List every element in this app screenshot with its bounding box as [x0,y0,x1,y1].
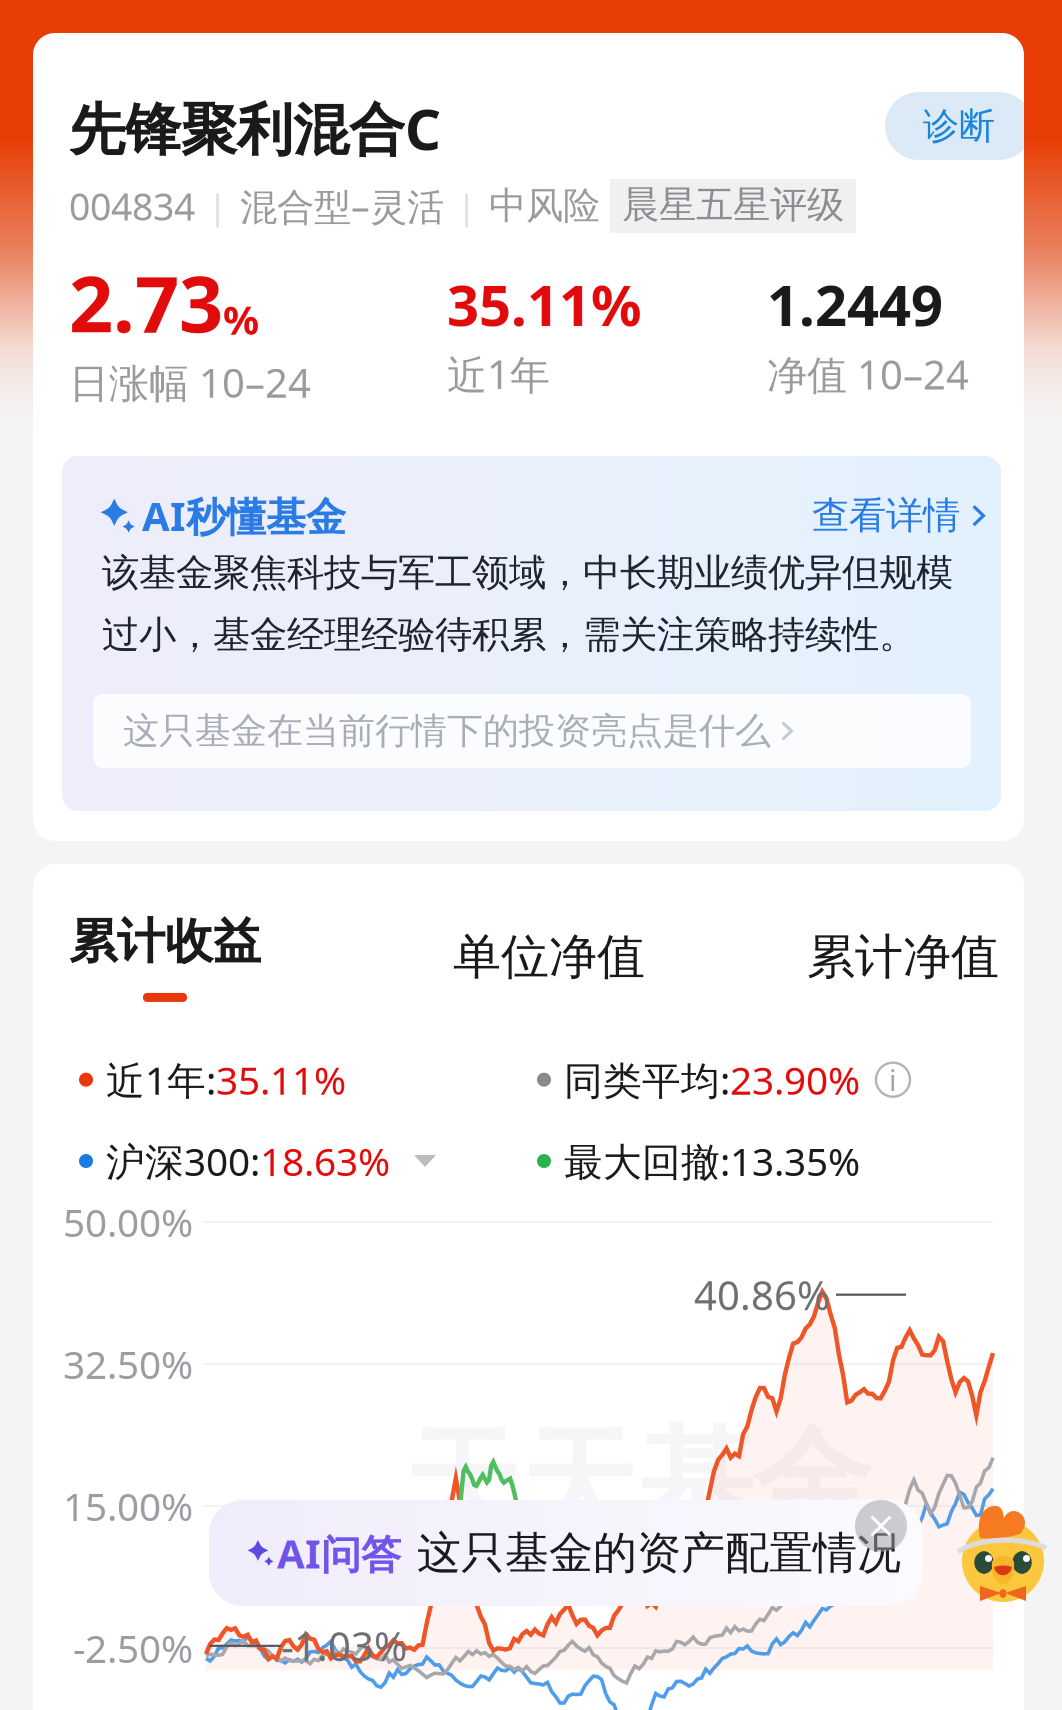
staticText: 诊断 [923,104,995,148]
staticText: 50.00% [63,1196,193,1248]
button[interactable]: 单位净值 [399,927,699,986]
staticText: i [889,1060,897,1099]
staticText: 15.00% [63,1480,193,1532]
staticText: 先锋聚利混合C [69,91,441,165]
button[interactable]: 查看详情 [812,493,985,539]
staticText: 这只基金在当前行情下的投资亮点是什么 [123,709,771,753]
staticText: 1.2449 [767,267,943,341]
staticText: 净值 10–24 [767,347,969,400]
staticText: | [457,183,476,229]
staticText: 该基金聚焦科技与军工领域，中长期业绩优异但规模 [102,550,953,596]
staticText: 混合型–灵活 [240,181,444,231]
staticText: 35.11% [447,267,642,341]
staticText: 近1年 [447,347,550,400]
staticText: 近1年: [106,1054,216,1105]
staticText: 最大回撤: [564,1135,730,1187]
staticText: 沪深300: [106,1135,260,1187]
button[interactable]: AI问答 [209,1500,923,1606]
button[interactable]: 这只基金在当前行情下的投资亮点是什么 [93,694,971,768]
staticText: 13.35% [730,1135,860,1187]
staticText: 中风险 [489,183,600,229]
button[interactable]: 累计净值 [699,927,999,986]
staticText: 004834 [69,181,195,231]
staticText: 日涨幅 10–24 [69,356,311,409]
staticText: 天天基金 [403,1412,871,1556]
staticText: | [208,183,227,229]
staticText: 同类平均: [564,1054,730,1105]
staticText: 40.86% [694,1268,830,1321]
staticText: 这只基金的资产配置情况 [417,1526,901,1580]
staticText: 查看详情 [812,493,960,539]
staticText: -2.50% [73,1622,193,1674]
staticText: 单位净值 [453,927,645,986]
staticText: AI问答 [277,1526,401,1580]
staticText: 35.11% [216,1054,346,1105]
staticText: 32.50% [63,1338,193,1390]
button[interactable]: 累计收益 [69,912,399,1002]
staticText: 23.90% [730,1054,860,1105]
staticText: 过小，基金经理经验待积累，需关注策略持续性。 [102,612,916,658]
staticText: -1.03% [281,1619,407,1672]
staticText: 18.63% [260,1135,390,1187]
button[interactable]: 关闭 [855,1500,907,1552]
staticText: 累计净值 [807,927,999,986]
staticText: % [223,293,259,346]
staticText: 晨星五星评级 [622,182,844,228]
staticText: 2.73 [69,251,223,354]
button[interactable]: 诊断 [885,92,1033,160]
staticText: AI秒懂基金 [142,489,346,542]
staticText: 累计收益 [69,912,261,971]
